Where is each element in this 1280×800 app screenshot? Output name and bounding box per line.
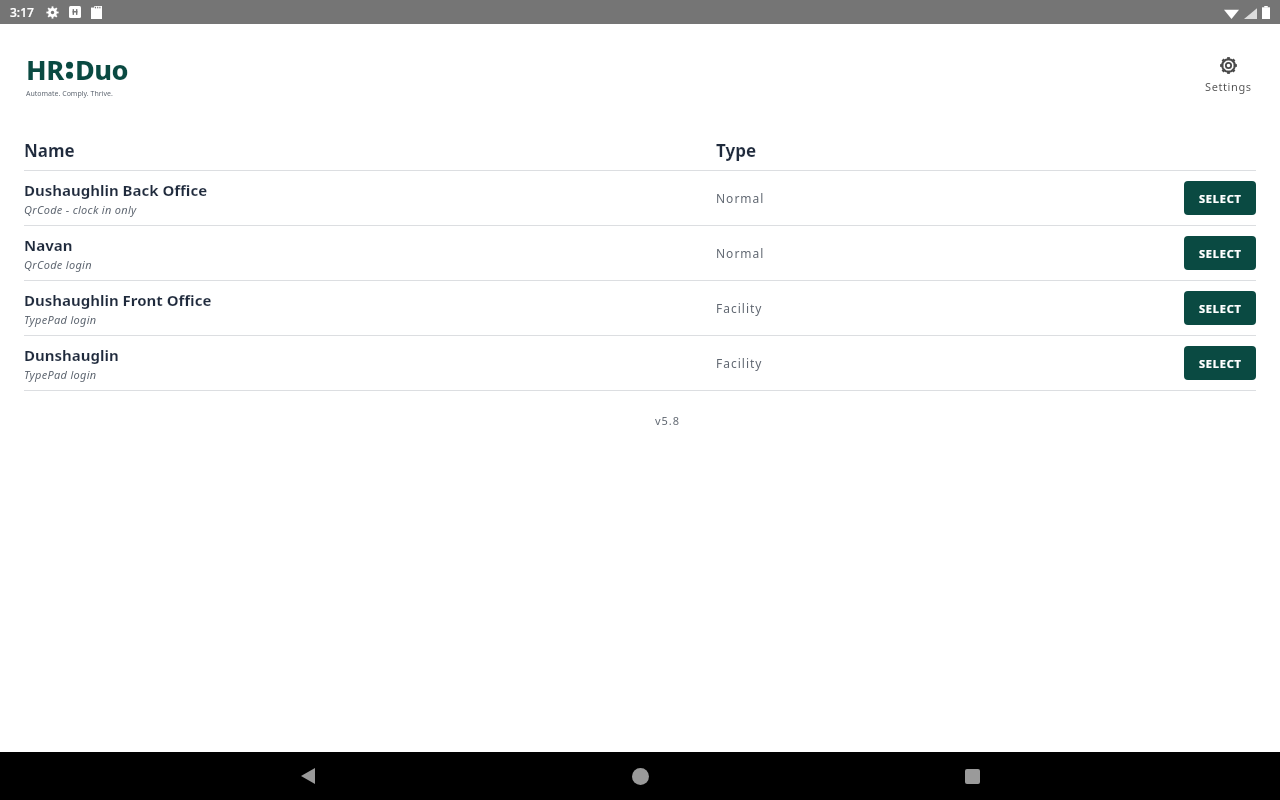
- button[interactable]: SELECT: [1184, 236, 1256, 270]
- staticText: QrCode login: [24, 257, 92, 272]
- staticText: Dushaughlin Back Office: [24, 180, 208, 200]
- staticText: TypePad login: [24, 312, 97, 327]
- staticText: Normal: [716, 245, 765, 261]
- staticText: Facility: [716, 300, 763, 316]
- staticText: Navan: [24, 235, 73, 255]
- staticText: Dushaughlin Front Office: [24, 290, 212, 310]
- staticText: SELECT: [1199, 191, 1242, 206]
- button[interactable]: Dushaughlin Front Office: [24, 281, 1256, 335]
- staticText: SELECT: [1199, 356, 1242, 371]
- staticText: Settings: [1205, 79, 1252, 94]
- staticText: Name: [24, 139, 716, 162]
- staticText: TypePad login: [24, 367, 97, 382]
- staticText: Dunshauglin: [24, 345, 119, 365]
- staticText: SELECT: [1199, 246, 1242, 261]
- button[interactable]: Dushaughlin Back Office: [24, 171, 1256, 225]
- button[interactable]: Back: [284, 752, 332, 800]
- button[interactable]: SELECT: [1184, 181, 1256, 215]
- staticText: v5.8: [0, 413, 680, 428]
- button[interactable]: Settings: [1195, 49, 1262, 100]
- staticText: 3:17: [10, 4, 34, 20]
- button[interactable]: Dunshauglin: [24, 336, 1256, 390]
- staticText: Normal: [716, 190, 765, 206]
- button[interactable]: Recents: [948, 752, 996, 800]
- staticText: Type: [716, 139, 757, 162]
- button[interactable]: SELECT: [1184, 346, 1256, 380]
- staticText: Automate. Comply. Thrive.: [26, 89, 113, 99]
- button[interactable]: Navan: [24, 226, 1256, 280]
- staticText: Facility: [716, 355, 763, 371]
- button[interactable]: Home: [616, 752, 664, 800]
- staticText: Duo: [75, 51, 129, 88]
- button[interactable]: SELECT: [1184, 291, 1256, 325]
- staticText: SELECT: [1199, 301, 1242, 316]
- staticText: QrCode - clock in only: [24, 202, 137, 217]
- staticText: HR: [26, 51, 64, 88]
